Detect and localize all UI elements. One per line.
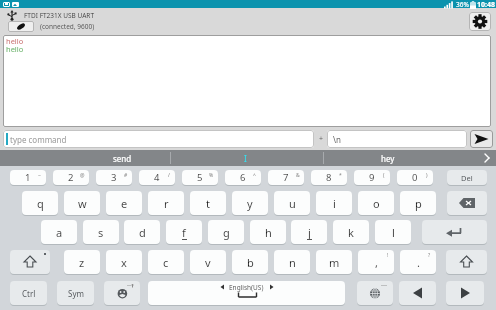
staticText: i xyxy=(333,196,336,211)
button[interactable] xyxy=(470,130,493,148)
staticText: f xyxy=(182,225,186,240)
button[interactable]: h xyxy=(250,220,286,244)
button[interactable]: 7 xyxy=(268,170,304,185)
button[interactable]: 8 xyxy=(311,170,347,185)
button[interactable]: 9 xyxy=(354,170,390,185)
button[interactable] xyxy=(446,250,487,274)
staticText: n xyxy=(289,255,296,270)
staticText: ( xyxy=(383,172,385,179)
staticText: e xyxy=(121,196,128,211)
staticText: 9 xyxy=(369,171,375,184)
staticText: I xyxy=(244,153,247,164)
button[interactable]: l xyxy=(375,220,411,244)
staticText: # xyxy=(124,172,128,179)
staticText: m xyxy=(329,255,340,270)
button[interactable] xyxy=(6,10,18,21)
staticText: hello xyxy=(6,44,24,53)
staticText: @ xyxy=(80,172,85,179)
button[interactable]: 2 xyxy=(53,170,89,185)
button[interactable]: Ctrl xyxy=(10,281,47,305)
button[interactable]: f xyxy=(166,220,202,244)
button[interactable]: 6 xyxy=(225,170,261,185)
button[interactable] xyxy=(8,21,34,32)
button[interactable] xyxy=(3,130,314,148)
button[interactable]: p xyxy=(400,191,436,215)
staticText: u xyxy=(289,196,296,211)
staticText: + xyxy=(319,134,324,144)
button[interactable] xyxy=(10,250,50,274)
staticText: ! xyxy=(387,252,389,259)
button[interactable]: i xyxy=(316,191,352,215)
staticText: 3 xyxy=(111,171,117,184)
button[interactable] xyxy=(327,130,467,148)
staticText: & xyxy=(296,172,300,179)
button[interactable]: 5 xyxy=(182,170,218,185)
button[interactable]: 0 xyxy=(397,170,433,185)
button[interactable]: English(US) xyxy=(148,281,345,305)
staticText: send xyxy=(113,153,132,164)
button[interactable]: w xyxy=(64,191,100,215)
button[interactable]: j xyxy=(291,220,327,244)
staticText: / xyxy=(168,172,170,179)
button[interactable]: g xyxy=(208,220,244,244)
button[interactable]: y xyxy=(232,191,268,215)
button[interactable]: , xyxy=(358,250,394,274)
button[interactable]: c xyxy=(148,250,184,274)
staticText: * xyxy=(339,172,342,179)
staticText: w xyxy=(78,196,87,211)
staticText: 5 xyxy=(197,171,203,184)
button[interactable]: o xyxy=(358,191,394,215)
button[interactable] xyxy=(357,281,393,305)
staticText: t xyxy=(206,196,210,211)
button[interactable]: u xyxy=(274,191,310,215)
staticText: . xyxy=(417,255,420,270)
button[interactable]: 4 xyxy=(139,170,175,185)
staticText: g xyxy=(223,225,230,240)
button[interactable]: m xyxy=(316,250,352,274)
button[interactable] xyxy=(446,281,484,305)
staticText: x xyxy=(121,255,127,270)
staticText: Sym xyxy=(68,288,84,299)
button[interactable]: r xyxy=(148,191,184,215)
staticText: 10:48 xyxy=(477,0,495,9)
button[interactable] xyxy=(447,191,487,215)
staticText: 4 xyxy=(154,171,160,184)
button[interactable]: 1 xyxy=(10,170,46,185)
button[interactable]: . xyxy=(400,250,436,274)
button[interactable] xyxy=(483,153,491,163)
staticText: 36% xyxy=(456,0,469,9)
button[interactable]: z xyxy=(64,250,100,274)
button[interactable]: e xyxy=(106,191,142,215)
button[interactable]: s xyxy=(83,220,119,244)
button[interactable] xyxy=(104,281,140,305)
staticText: l xyxy=(392,225,395,240)
staticText: b xyxy=(247,255,254,270)
staticText: , xyxy=(375,255,378,270)
staticText: type command xyxy=(10,134,67,145)
button[interactable]: n xyxy=(274,250,310,274)
staticText: p xyxy=(415,196,422,211)
button[interactable]: a xyxy=(41,220,77,244)
button[interactable]: x xyxy=(106,250,142,274)
button[interactable] xyxy=(469,12,491,31)
staticText: ? xyxy=(428,252,431,259)
button[interactable]: 3 xyxy=(96,170,132,185)
staticText: z xyxy=(79,255,85,270)
button[interactable] xyxy=(399,281,436,305)
button[interactable]: b xyxy=(232,250,268,274)
button[interactable]: v xyxy=(190,250,226,274)
staticText: 1 xyxy=(25,171,31,184)
button[interactable]: t xyxy=(190,191,226,215)
staticText: d xyxy=(139,225,146,240)
button[interactable]: q xyxy=(22,191,58,215)
button[interactable]: Del xyxy=(447,170,487,185)
staticText: % xyxy=(209,172,214,179)
staticText: r xyxy=(164,196,169,211)
button[interactable]: k xyxy=(333,220,369,244)
staticText: o xyxy=(373,196,380,211)
staticText: v xyxy=(205,255,211,270)
button[interactable]: d xyxy=(124,220,160,244)
button[interactable]: Sym xyxy=(57,281,94,305)
button[interactable] xyxy=(422,220,487,244)
staticText: c xyxy=(163,255,169,270)
